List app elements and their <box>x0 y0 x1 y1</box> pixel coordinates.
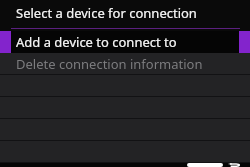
button[interactable]: Menu back <box>187 163 241 167</box>
button[interactable]: Add a device to connect to <box>0 31 250 53</box>
staticText: Select a device for connection <box>16 4 197 22</box>
button[interactable]: Delete connection information <box>0 53 250 74</box>
staticText: Delete connection information <box>16 55 203 73</box>
staticText: Add a device to connect to <box>16 33 177 51</box>
